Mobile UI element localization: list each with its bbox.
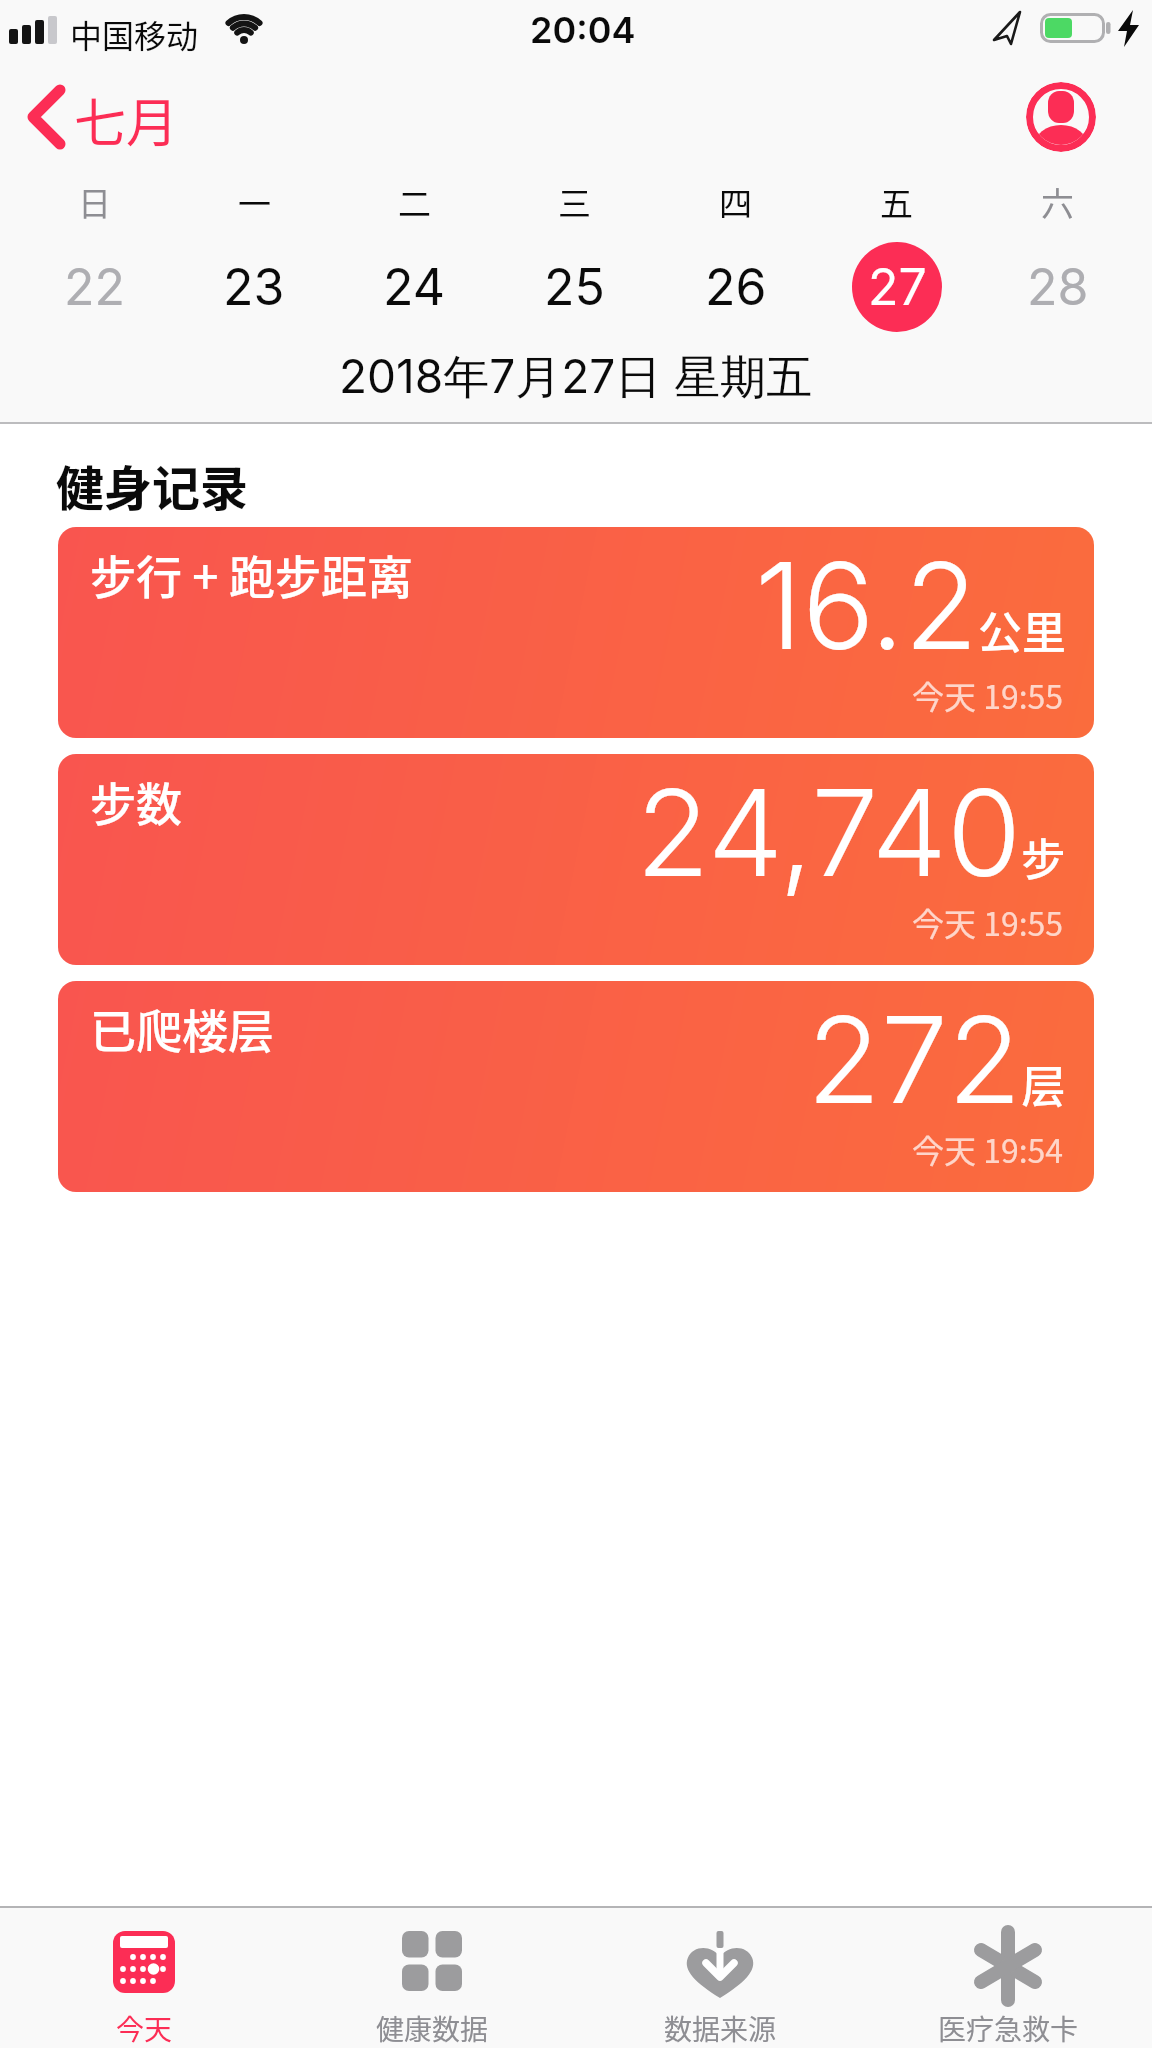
staticText: 今天 xyxy=(116,2008,173,2048)
staticText: 数据来源 xyxy=(664,2008,777,2048)
staticText: 20:04 xyxy=(530,8,636,48)
staticText: 已爬楼层 xyxy=(90,995,274,1062)
staticText: 28 xyxy=(1027,257,1089,317)
staticText: 24 xyxy=(383,257,446,317)
staticText: 24,740步 xyxy=(636,760,1066,905)
button[interactable]: 22 xyxy=(14,240,174,334)
staticText: 272层 xyxy=(807,987,1066,1132)
staticText: 步行 + 跑步距离 xyxy=(90,541,413,608)
staticText: 22 xyxy=(64,257,125,317)
button[interactable]: 25 xyxy=(494,240,655,334)
staticText: 健康数据 xyxy=(376,2008,489,2048)
staticText: 2018年7月27日 星期五 xyxy=(339,348,813,404)
button[interactable]: 七月 xyxy=(26,82,179,152)
staticText: 26 xyxy=(705,257,767,317)
button[interactable]: 28 xyxy=(977,240,1138,334)
staticText: 健身记录 xyxy=(56,450,249,520)
button[interactable]: 已爬楼层 xyxy=(58,981,1094,1192)
staticText: 今天 19:55 xyxy=(912,672,1064,718)
button[interactable]: 24 xyxy=(334,240,494,334)
button[interactable]: 数据来源 xyxy=(576,1908,864,2048)
button[interactable]: 27 xyxy=(816,240,977,334)
button[interactable]: 健康数据 xyxy=(288,1908,576,2048)
staticText: 27 xyxy=(868,257,927,317)
staticText: 七月 xyxy=(74,82,179,152)
button[interactable]: 23 xyxy=(174,240,334,334)
staticText: 五 xyxy=(880,178,913,222)
staticText: 中国移动 xyxy=(70,11,199,57)
staticText: 日 xyxy=(78,178,111,222)
button[interactable]: 今天 xyxy=(0,1908,288,2048)
staticText: 二 xyxy=(398,178,431,222)
staticText: 一 xyxy=(238,178,271,222)
button[interactable] xyxy=(1026,82,1096,152)
staticText: 四 xyxy=(719,178,752,222)
button[interactable]: 26 xyxy=(655,240,816,334)
staticText: 三 xyxy=(558,178,591,222)
staticText: 16.2公里 xyxy=(755,533,1066,678)
staticText: 步数 xyxy=(90,768,182,835)
button[interactable]: 医疗急救卡 xyxy=(864,1908,1152,2048)
staticText: 六 xyxy=(1041,178,1074,222)
staticText: 25 xyxy=(544,257,605,317)
button[interactable]: 步数 xyxy=(58,754,1094,965)
staticText: 23 xyxy=(223,257,285,317)
staticText: 医疗急救卡 xyxy=(938,2008,1079,2048)
staticText: 今天 19:55 xyxy=(912,899,1064,945)
button[interactable]: 步行 + 跑步距离 xyxy=(58,527,1094,738)
staticText: 今天 19:54 xyxy=(912,1126,1064,1172)
